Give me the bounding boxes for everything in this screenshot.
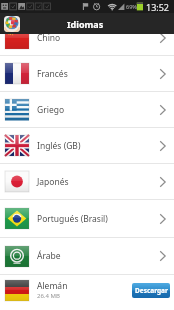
- button[interactable]: Alemán: [0, 275, 174, 305]
- other: Open Francés: [157, 68, 169, 80]
- staticText: Portugués (Brasil): [37, 213, 108, 225]
- staticText: Francés: [37, 68, 68, 80]
- button[interactable]: Portugués (Brasil): [0, 200, 174, 237]
- button[interactable]: Francés: [0, 56, 174, 91]
- button[interactable]: Árabe: [0, 238, 174, 274]
- staticText: 26.4 MB: [37, 292, 60, 300]
- other: Open Japonés: [157, 176, 169, 188]
- other: Open Árabe: [157, 250, 169, 262]
- button[interactable]: Inglés (GB): [0, 128, 174, 163]
- staticText: 69%: [126, 3, 137, 10]
- other: Open Griego: [157, 104, 169, 116]
- button[interactable]: Descargar: [132, 283, 170, 298]
- staticText: Descargar: [135, 286, 168, 295]
- other: Open Inglés (GB): [157, 140, 169, 152]
- staticText: Alemán: [37, 280, 68, 292]
- staticText: 13:52: [146, 1, 170, 13]
- button[interactable]: Japonés: [0, 164, 174, 199]
- staticText: Griego: [37, 104, 65, 116]
- staticText: Idiomas: [67, 18, 104, 30]
- staticText: Inglés (GB): [37, 140, 81, 152]
- button[interactable]: Chino: [0, 21, 174, 55]
- staticText: Árabe: [37, 250, 61, 262]
- staticText: Chino: [37, 32, 61, 44]
- button[interactable]: Open navigation: [4, 16, 20, 32]
- staticText: Japonés: [37, 176, 69, 188]
- other: Open Chino: [157, 32, 169, 44]
- button[interactable]: Griego: [0, 92, 174, 127]
- other: Open Portugués (Brasil): [157, 213, 169, 225]
